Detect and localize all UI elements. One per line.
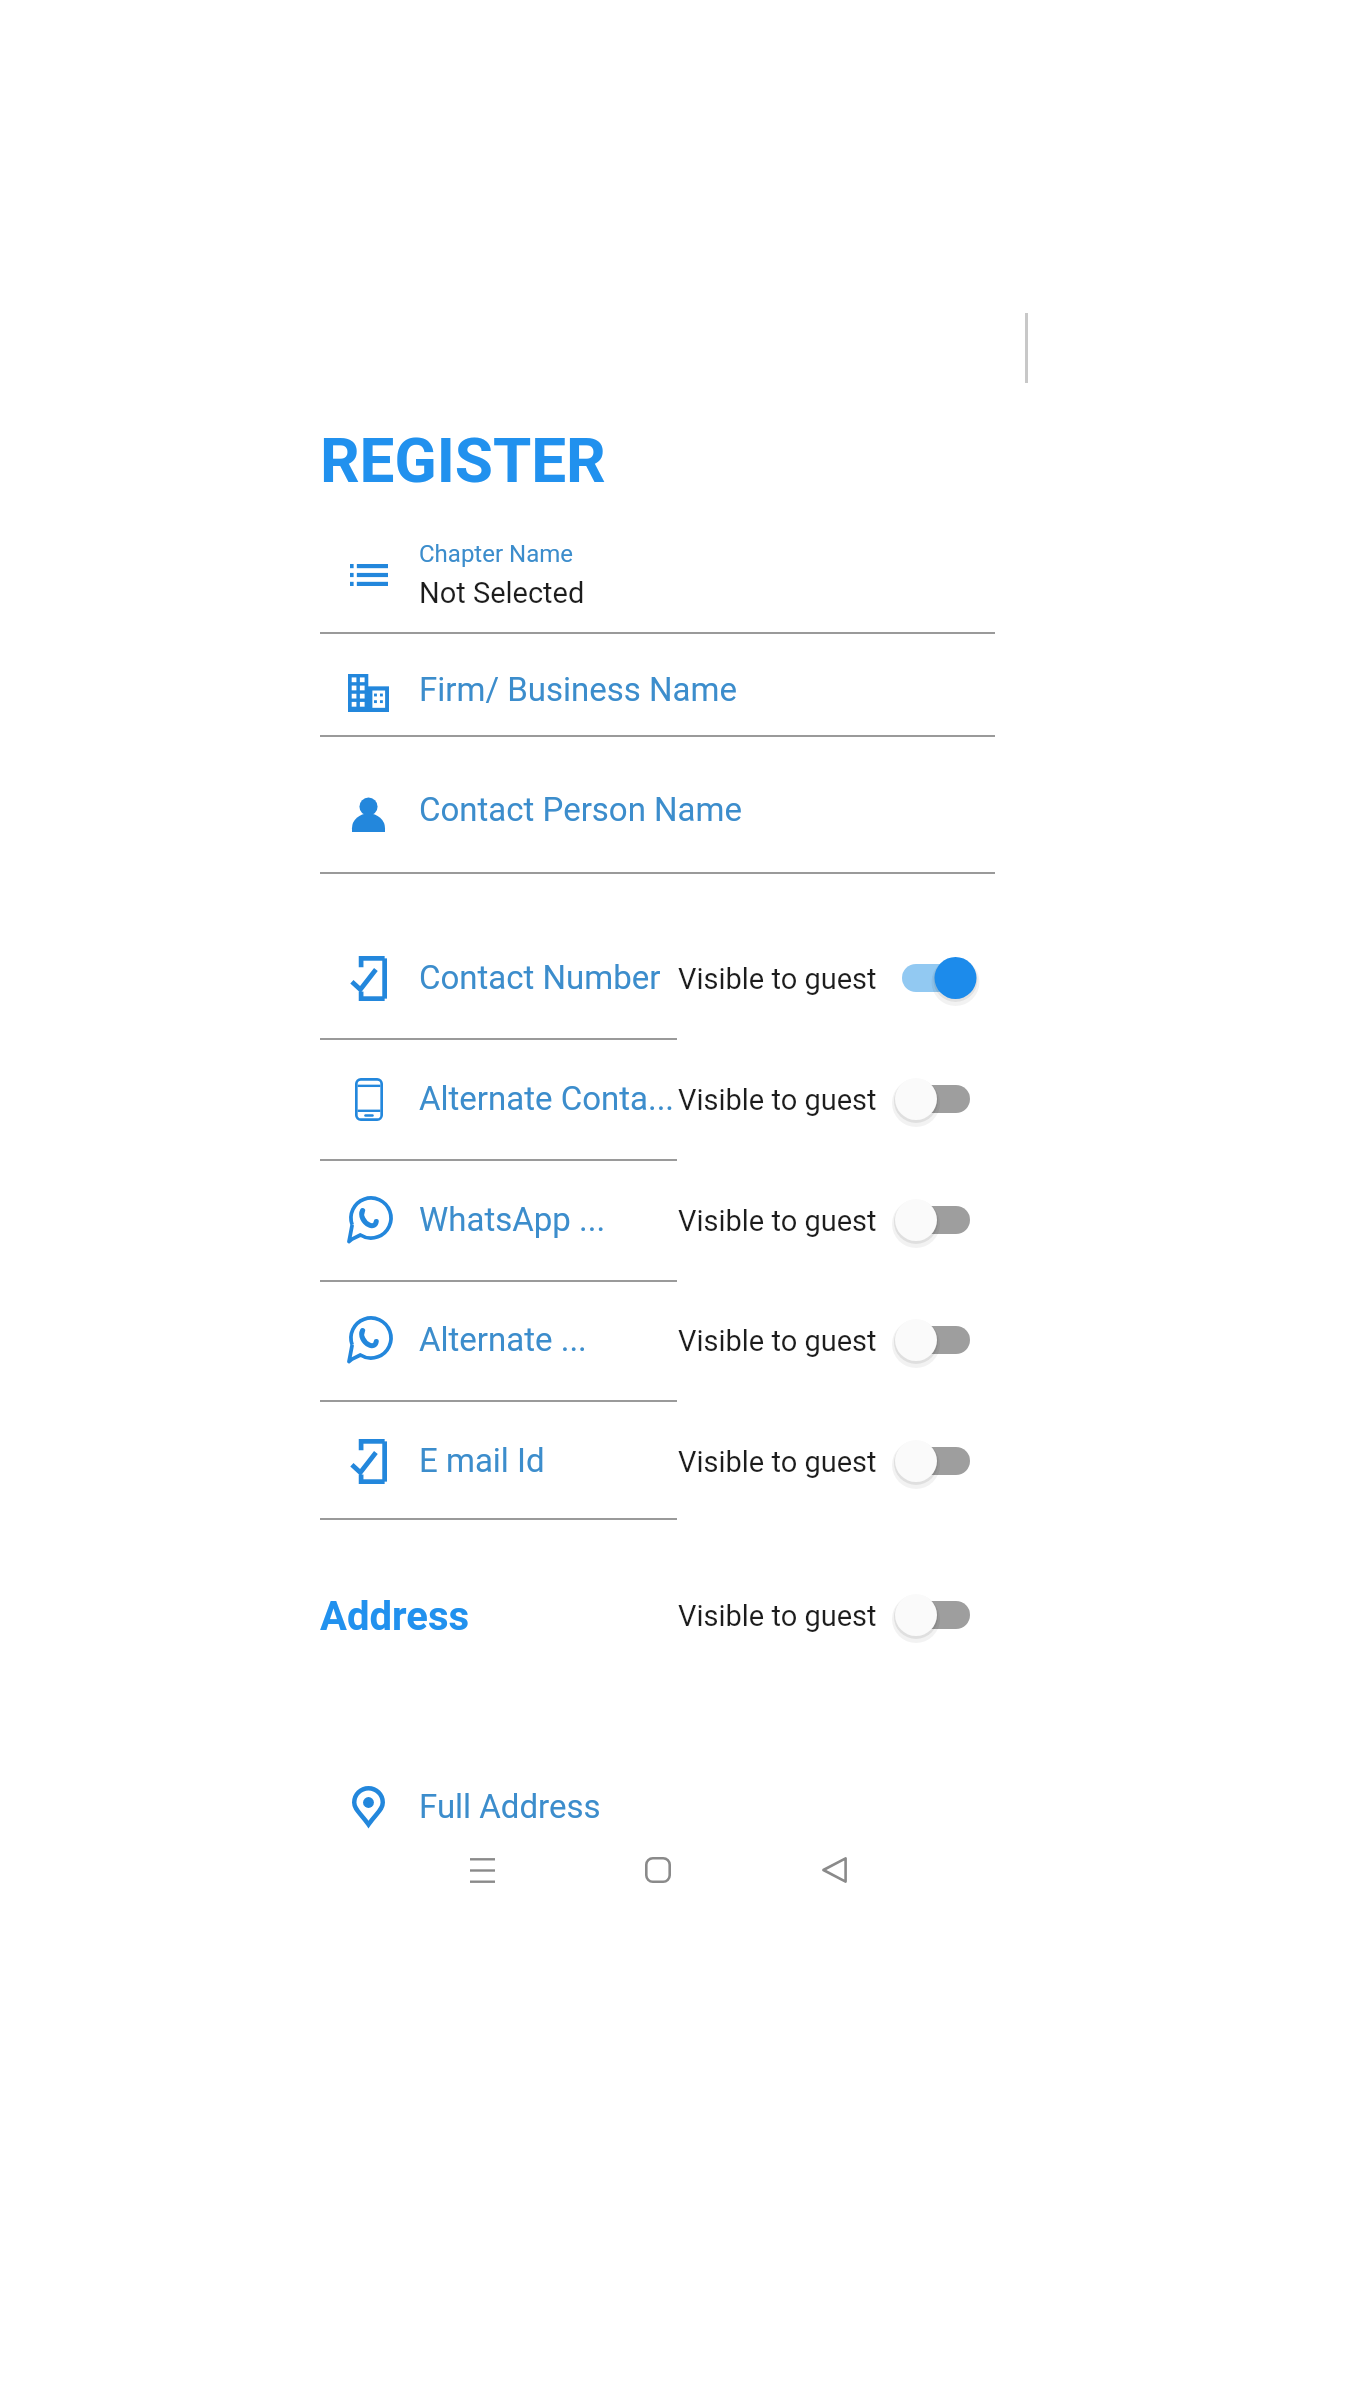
button[interactable]: Contact Number <box>320 938 995 1018</box>
button[interactable]: Address <box>320 1593 470 1640</box>
button[interactable]: Firm/ Business Name <box>320 648 995 738</box>
button[interactable]: REGISTER <box>320 424 606 497</box>
staticText: Alternate Conta... <box>419 1079 675 1118</box>
button[interactable]: Contact Person Name <box>320 769 995 859</box>
staticText: Alternate ... <box>419 1320 587 1359</box>
button[interactable]: Full Address <box>320 1761 995 1851</box>
staticText: E mail Id <box>419 1441 545 1480</box>
button[interactable]: Visible to guest, off <box>891 1312 987 1368</box>
staticText: Full Address <box>419 1787 601 1826</box>
button[interactable]: Home <box>627 1839 689 1901</box>
button[interactable]: Visible to guest, off <box>891 1192 987 1248</box>
staticText: WhatsApp ... <box>419 1200 606 1239</box>
staticText: Contact Person Name <box>419 790 743 829</box>
button[interactable]: Alternate Conta... <box>320 1059 995 1139</box>
staticText: Visible to guest <box>678 1599 877 1633</box>
staticText: Visible to guest <box>678 1083 877 1117</box>
staticText: Visible to guest <box>678 962 877 996</box>
staticText: Contact Number <box>419 958 661 997</box>
button[interactable]: E mail Id <box>320 1421 995 1501</box>
button[interactable]: Back <box>803 1839 865 1901</box>
button[interactable]: Visible to guest, off <box>891 1071 987 1127</box>
staticText: Visible to guest <box>678 1324 877 1358</box>
staticText: Address <box>320 1593 470 1640</box>
staticText: Not Selected <box>419 576 585 610</box>
staticText: Firm/ Business Name <box>419 670 737 709</box>
button[interactable]: Chapter Name <box>320 520 995 632</box>
button[interactable]: Visible to guest, on <box>891 950 987 1006</box>
button[interactable]: WhatsApp ... <box>320 1180 995 1260</box>
button[interactable]: Alternate ... <box>320 1300 995 1380</box>
button[interactable]: Visible to guest <box>678 1599 877 1633</box>
staticText: Visible to guest <box>678 1445 877 1479</box>
button[interactable]: Visible to guest, off <box>891 1587 987 1643</box>
button[interactable]: Visible to guest, off <box>891 1433 987 1489</box>
staticText: REGISTER <box>320 424 606 497</box>
staticText: Chapter Name <box>419 540 573 568</box>
staticText: Visible to guest <box>678 1204 877 1238</box>
button[interactable]: Recents <box>451 1839 513 1901</box>
